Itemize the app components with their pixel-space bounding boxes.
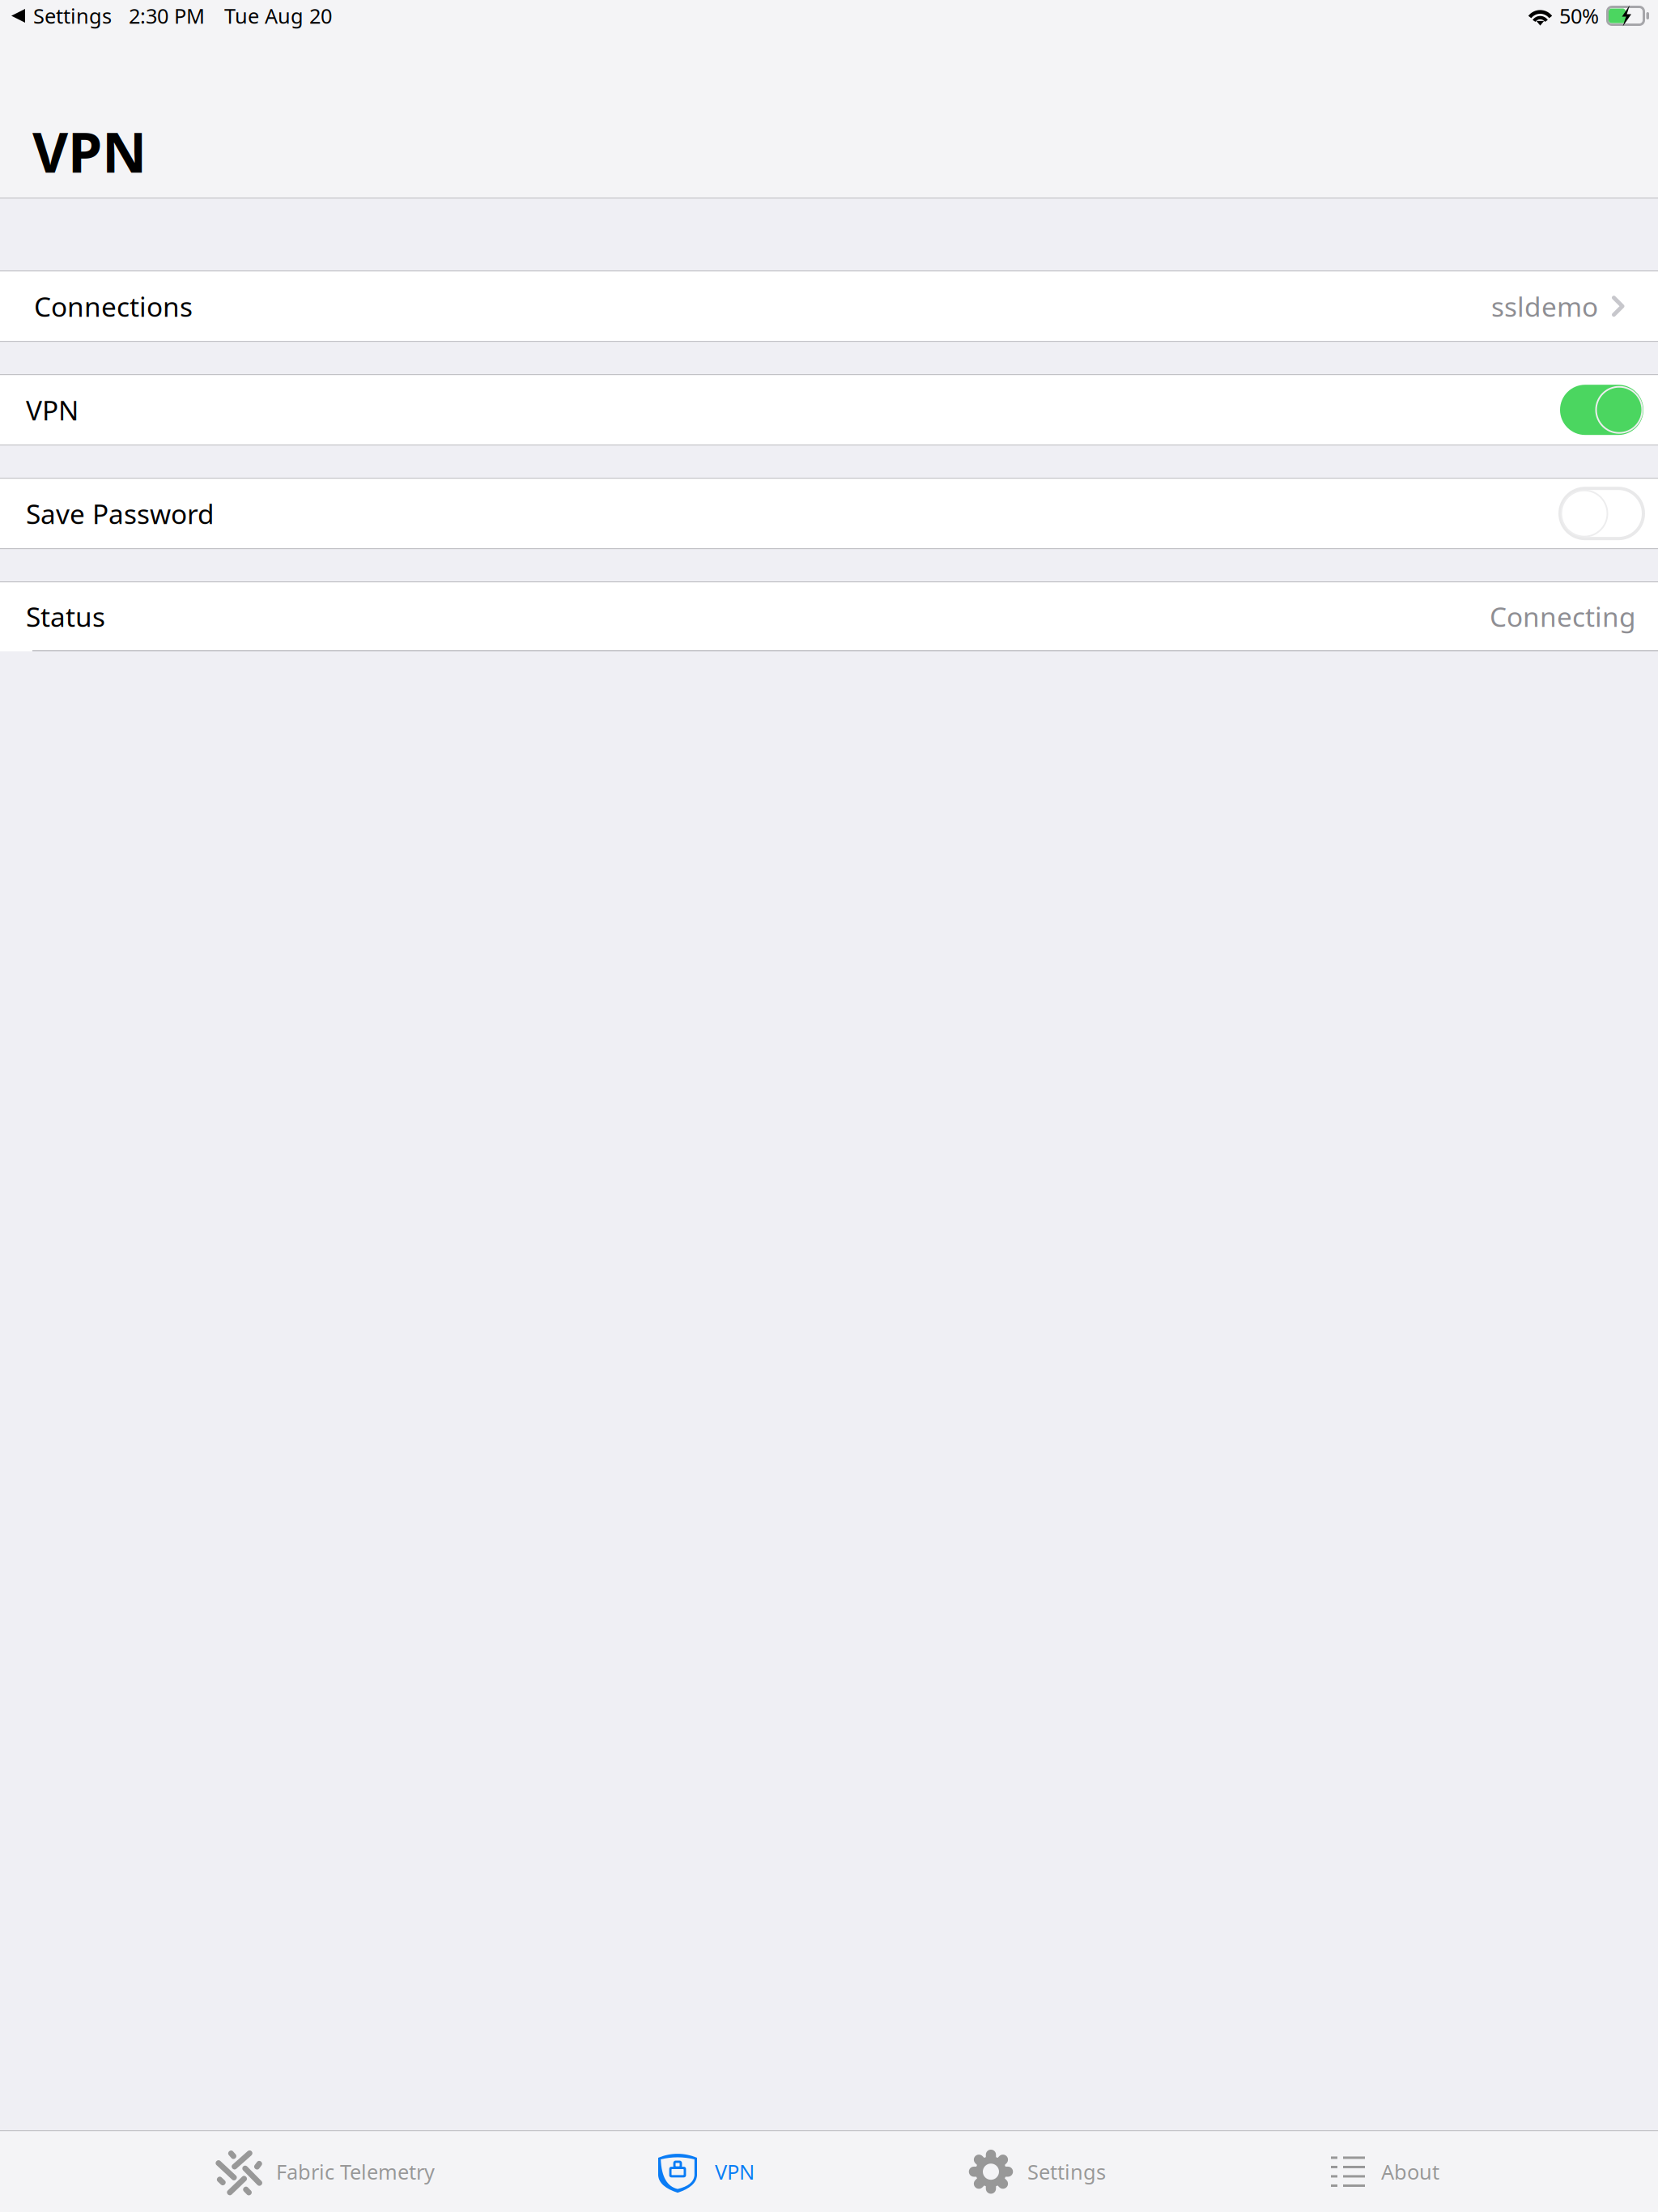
staticText: Status (26, 598, 105, 634)
staticText: Connections (34, 288, 193, 324)
staticText: ssldemo (1491, 288, 1598, 324)
staticText: Connecting (1490, 598, 1636, 634)
button[interactable]: About (1331, 2131, 1439, 2212)
staticText: 50% (1559, 2, 1599, 29)
staticText: VPN (715, 2158, 755, 2185)
button[interactable]: Settings (971, 2131, 1106, 2212)
staticText: Settings (33, 2, 112, 29)
button[interactable]: VPN (0, 375, 1658, 445)
button[interactable]: Connections (0, 272, 1658, 341)
staticText: Fabric Telemetry (276, 2158, 435, 2185)
button[interactable]: Fabric Telemetry (215, 2131, 435, 2212)
staticText: VPN (26, 392, 79, 428)
button[interactable]: Save Password (0, 479, 1658, 548)
staticText: Settings (1027, 2158, 1106, 2185)
staticText: About (1381, 2158, 1439, 2185)
button[interactable]: Status (0, 582, 1658, 650)
staticText: Tue Aug 20 (224, 2, 332, 29)
staticText: VPN (32, 115, 147, 188)
staticText: Save Password (26, 496, 215, 531)
button[interactable]: Back to Settings (0, 2, 112, 29)
staticText: 2:30 PM (129, 2, 205, 29)
button[interactable]: VPN (658, 2131, 755, 2212)
